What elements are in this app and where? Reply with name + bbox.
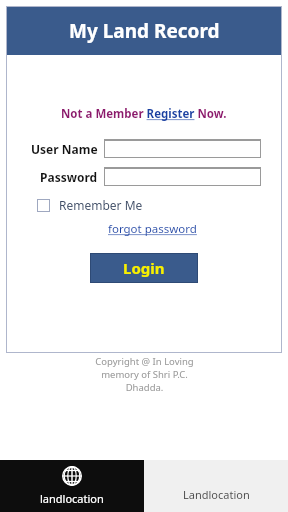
button[interactable]: Login xyxy=(91,254,197,282)
other: landlocation xyxy=(62,466,82,486)
staticText: Login xyxy=(123,258,165,278)
staticText: landlocation xyxy=(40,491,104,506)
button[interactable]: Landlocation xyxy=(144,460,288,512)
staticText: Password xyxy=(40,169,98,185)
staticText: Copyright @ In Loving memory of Shri P.C… xyxy=(95,355,194,394)
button[interactable]: landlocation xyxy=(0,460,144,512)
staticText: Remember Me xyxy=(59,197,143,213)
staticText: Landlocation xyxy=(183,487,250,502)
button[interactable]: Remember Me xyxy=(37,197,143,213)
button[interactable]: forgot password xyxy=(108,221,197,237)
staticText: My Land Record xyxy=(69,18,220,44)
button[interactable]: Not a Member Register Now. xyxy=(61,106,227,122)
staticText: User Name xyxy=(31,141,98,157)
